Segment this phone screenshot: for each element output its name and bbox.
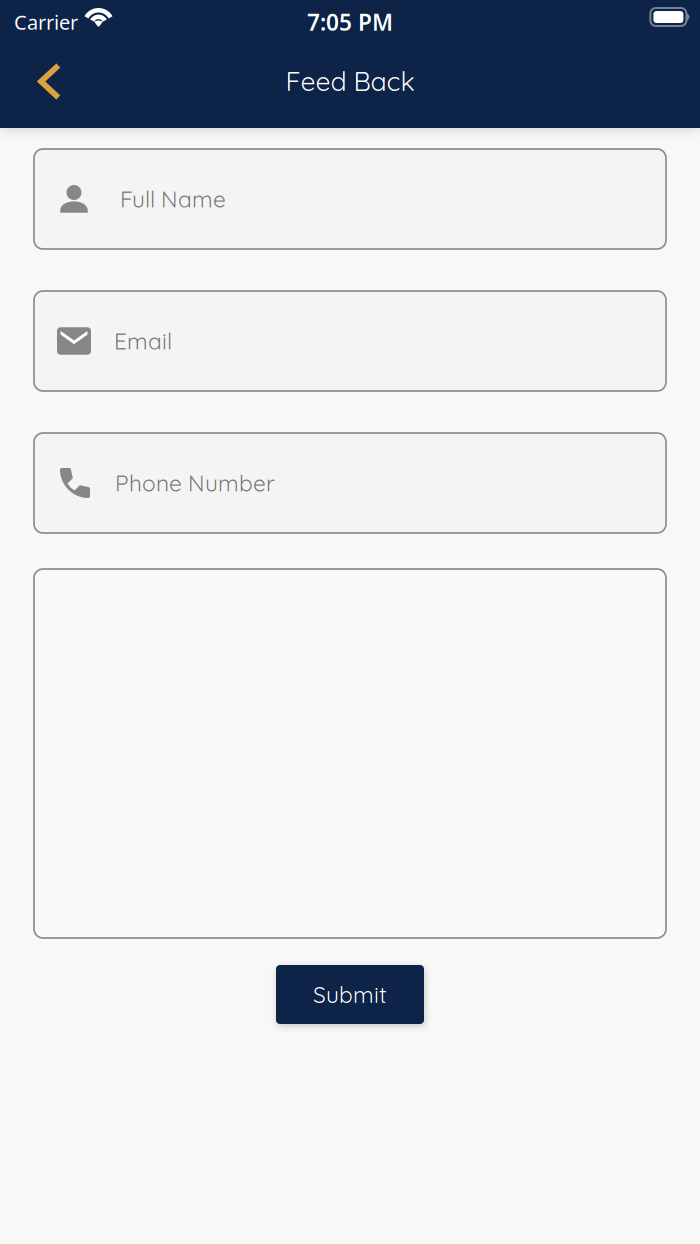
staticText: Carrier	[14, 9, 78, 35]
staticText: Full Name	[120, 185, 226, 213]
staticText: Email	[114, 327, 172, 355]
button[interactable]: Submit	[276, 965, 424, 1024]
staticText: 7:05 PM	[307, 7, 393, 37]
staticText: Submit	[313, 980, 387, 1009]
button[interactable]: Back	[0, 53, 80, 119]
staticText: Phone Number	[115, 469, 275, 497]
staticText: Feed Back	[285, 64, 414, 98]
